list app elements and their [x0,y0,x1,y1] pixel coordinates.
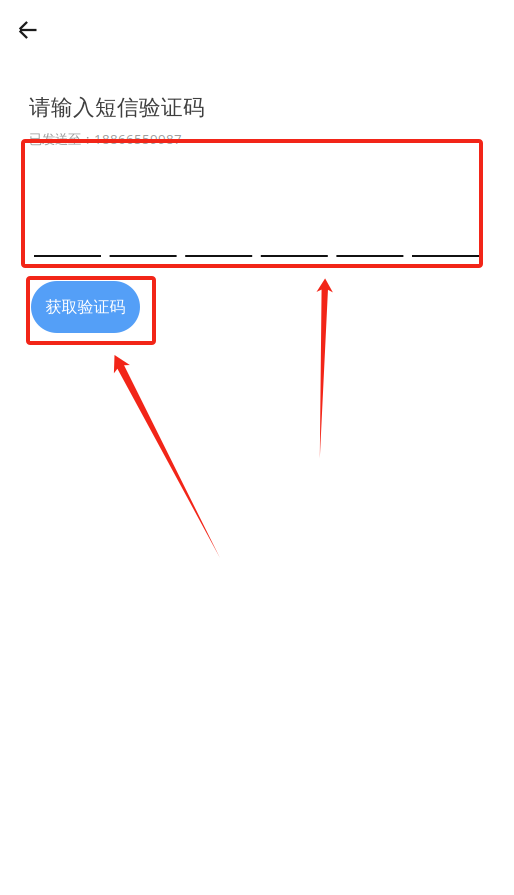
button[interactable]: Back [5,8,49,52]
staticText: 获取验证码 [45,297,125,317]
button[interactable]: 获取验证码 [31,281,140,333]
staticText: 请输入短信验证码 [29,94,205,121]
staticText: 已发送至：18866559987 [29,130,182,148]
